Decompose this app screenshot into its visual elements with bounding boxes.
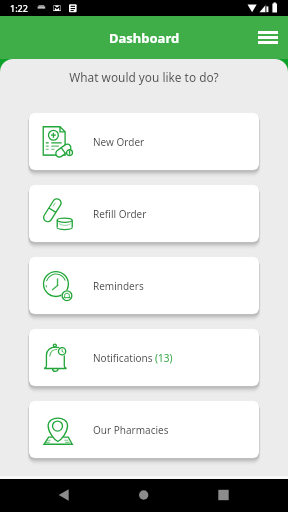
button[interactable]: Our Pharmacies (29, 401, 259, 458)
button[interactable]: Menu (254, 24, 281, 51)
button[interactable]: New Order (29, 113, 259, 170)
staticText: What would you like to do? (0, 69, 288, 85)
staticText: Reminders (93, 279, 144, 293)
staticText: Refill Order (93, 207, 147, 221)
staticText: Notifications (13) (93, 351, 173, 365)
staticText: 1:22 (10, 2, 28, 14)
button[interactable]: Recent apps (192, 479, 288, 512)
button[interactable]: Refill Order (29, 185, 259, 242)
staticText: Our Pharmacies (93, 423, 169, 437)
staticText: New Order (93, 135, 145, 149)
button[interactable]: Back (0, 479, 96, 512)
button[interactable]: Home (96, 479, 192, 512)
button[interactable]: Reminders (29, 257, 259, 314)
button[interactable]: Notifications (13) (29, 329, 259, 386)
staticText: Dashboard (109, 29, 180, 47)
